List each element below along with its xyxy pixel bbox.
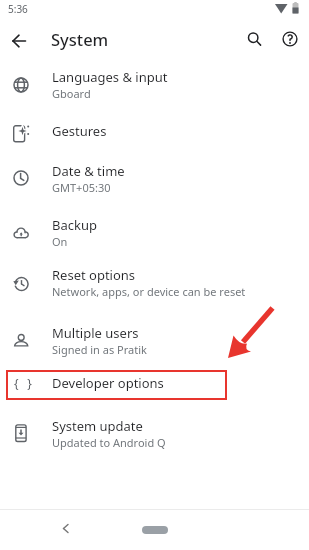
button[interactable]: { } (0, 368, 309, 398)
staticText: On (52, 234, 68, 249)
button[interactable]: Gestures (0, 109, 309, 153)
button[interactable]: Reset options (0, 258, 309, 306)
staticText: System (51, 28, 109, 50)
button[interactable]: Date & time (0, 154, 309, 202)
button[interactable]: Backup (0, 208, 309, 257)
staticText: { } (14, 375, 35, 391)
staticText: System update (52, 417, 143, 435)
button[interactable]: Multiple users (0, 316, 309, 364)
button[interactable] (56, 518, 76, 538)
button[interactable] (281, 30, 298, 47)
staticText: Languages & input (52, 68, 168, 86)
staticText: 5:36 (8, 2, 28, 16)
button[interactable] (142, 526, 168, 534)
staticText: Developer options (52, 374, 164, 392)
staticText: Multiple users (52, 324, 139, 342)
button[interactable]: System update (0, 409, 309, 457)
staticText: Network, apps, or device can be reset (52, 284, 246, 299)
staticText: Gestures (52, 122, 107, 140)
staticText: Backup (52, 216, 97, 234)
staticText: Date & time (52, 162, 125, 180)
button[interactable] (6, 28, 32, 54)
button[interactable] (243, 28, 265, 50)
button[interactable]: Languages & input (0, 60, 309, 109)
staticText: Gboard (52, 86, 91, 101)
staticText: Updated to Android Q (52, 435, 166, 450)
staticText: Reset options (52, 266, 136, 284)
staticText: Signed in as Pratik (52, 342, 147, 357)
staticText: GMT+05:30 (52, 180, 111, 195)
